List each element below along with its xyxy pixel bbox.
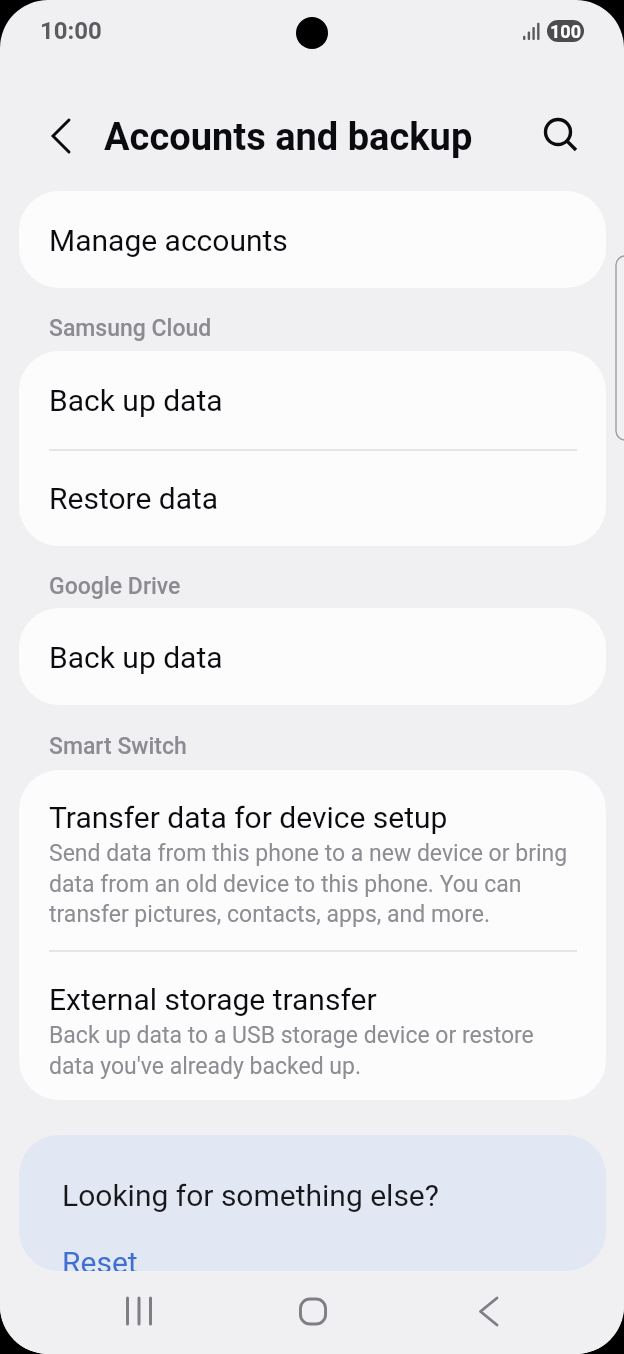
button[interactable]: Manage accounts: [19, 191, 606, 288]
staticText: Restore data: [49, 481, 219, 516]
button[interactable]: Search: [530, 108, 582, 160]
staticText: Back up data to a USB storage device or …: [49, 1022, 574, 1079]
staticText: Looking for something else?: [62, 1178, 439, 1213]
button[interactable]: Back up data: [19, 608, 606, 705]
button[interactable]: Navigate up: [32, 108, 89, 165]
button[interactable]: Transfer data for device setup: [19, 770, 606, 950]
staticText: Reset: [62, 1245, 138, 1271]
button[interactable]: Back: [444, 1285, 532, 1340]
staticText: Send data from this phone to a new devic…: [49, 840, 574, 927]
staticText: Back up data: [49, 640, 223, 675]
button[interactable]: External storage transfer: [19, 950, 606, 1100]
button[interactable]: Recent apps: [95, 1285, 183, 1340]
button[interactable]: Looking for something else?: [19, 1135, 606, 1271]
staticText: Samsung Cloud: [49, 315, 212, 342]
button[interactable]: Home: [269, 1285, 357, 1340]
button[interactable]: Back up data: [19, 351, 606, 449]
staticText: Transfer data for device setup: [49, 800, 448, 835]
staticText: Accounts and backup: [104, 115, 473, 160]
button[interactable]: Restore data: [19, 449, 606, 546]
staticText: Smart Switch: [49, 733, 187, 760]
staticText: External storage transfer: [49, 982, 377, 1017]
staticText: Manage accounts: [49, 223, 288, 258]
staticText: 10:00: [40, 17, 102, 45]
staticText: Back up data: [49, 383, 223, 418]
staticText: 100: [550, 21, 581, 42]
staticText: Google Drive: [49, 573, 181, 600]
